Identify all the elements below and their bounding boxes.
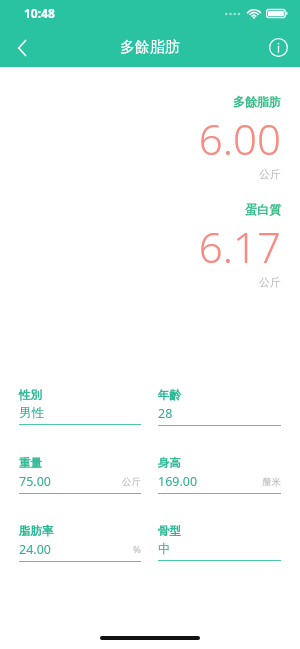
button[interactable]: 重量 [19,456,141,494]
staticText: 脂肪率 [19,524,54,538]
staticText: 骨型 [158,524,181,538]
button[interactable]: 骨型 [158,524,281,561]
staticText: 169.00 [158,473,198,490]
staticText: 公斤 [259,167,281,181]
staticText: 6.00 [198,110,281,167]
staticText: % [133,543,141,556]
staticText: 公斤 [259,275,281,289]
staticText: 重量 [19,456,42,470]
staticText: 6.17 [198,218,281,275]
staticText: 年齡 [158,388,181,402]
staticText: 蛋白質 [245,202,281,217]
staticText: 75.00 [19,473,51,490]
staticText: 公斤 [122,476,141,488]
staticText: 釐米 [262,476,281,488]
button[interactable]: 脂肪率 [19,524,141,562]
staticText: 男性 [19,405,44,421]
staticText: 多餘脂肪 [120,38,180,57]
staticText: 身高 [158,456,181,470]
staticText: 性別 [19,388,42,402]
button[interactable]: 身高 [158,456,281,494]
button[interactable]: Back [0,28,44,67]
staticText: 24.00 [19,541,51,558]
button[interactable]: 性別 [19,388,141,425]
button[interactable]: 年齡 [158,388,281,426]
staticText: 10:48 [24,5,55,21]
staticText: 中 [158,541,171,557]
staticText: 多餘脂肪 [233,94,281,109]
button[interactable]: Info [256,28,300,67]
staticText: 28 [158,405,173,422]
